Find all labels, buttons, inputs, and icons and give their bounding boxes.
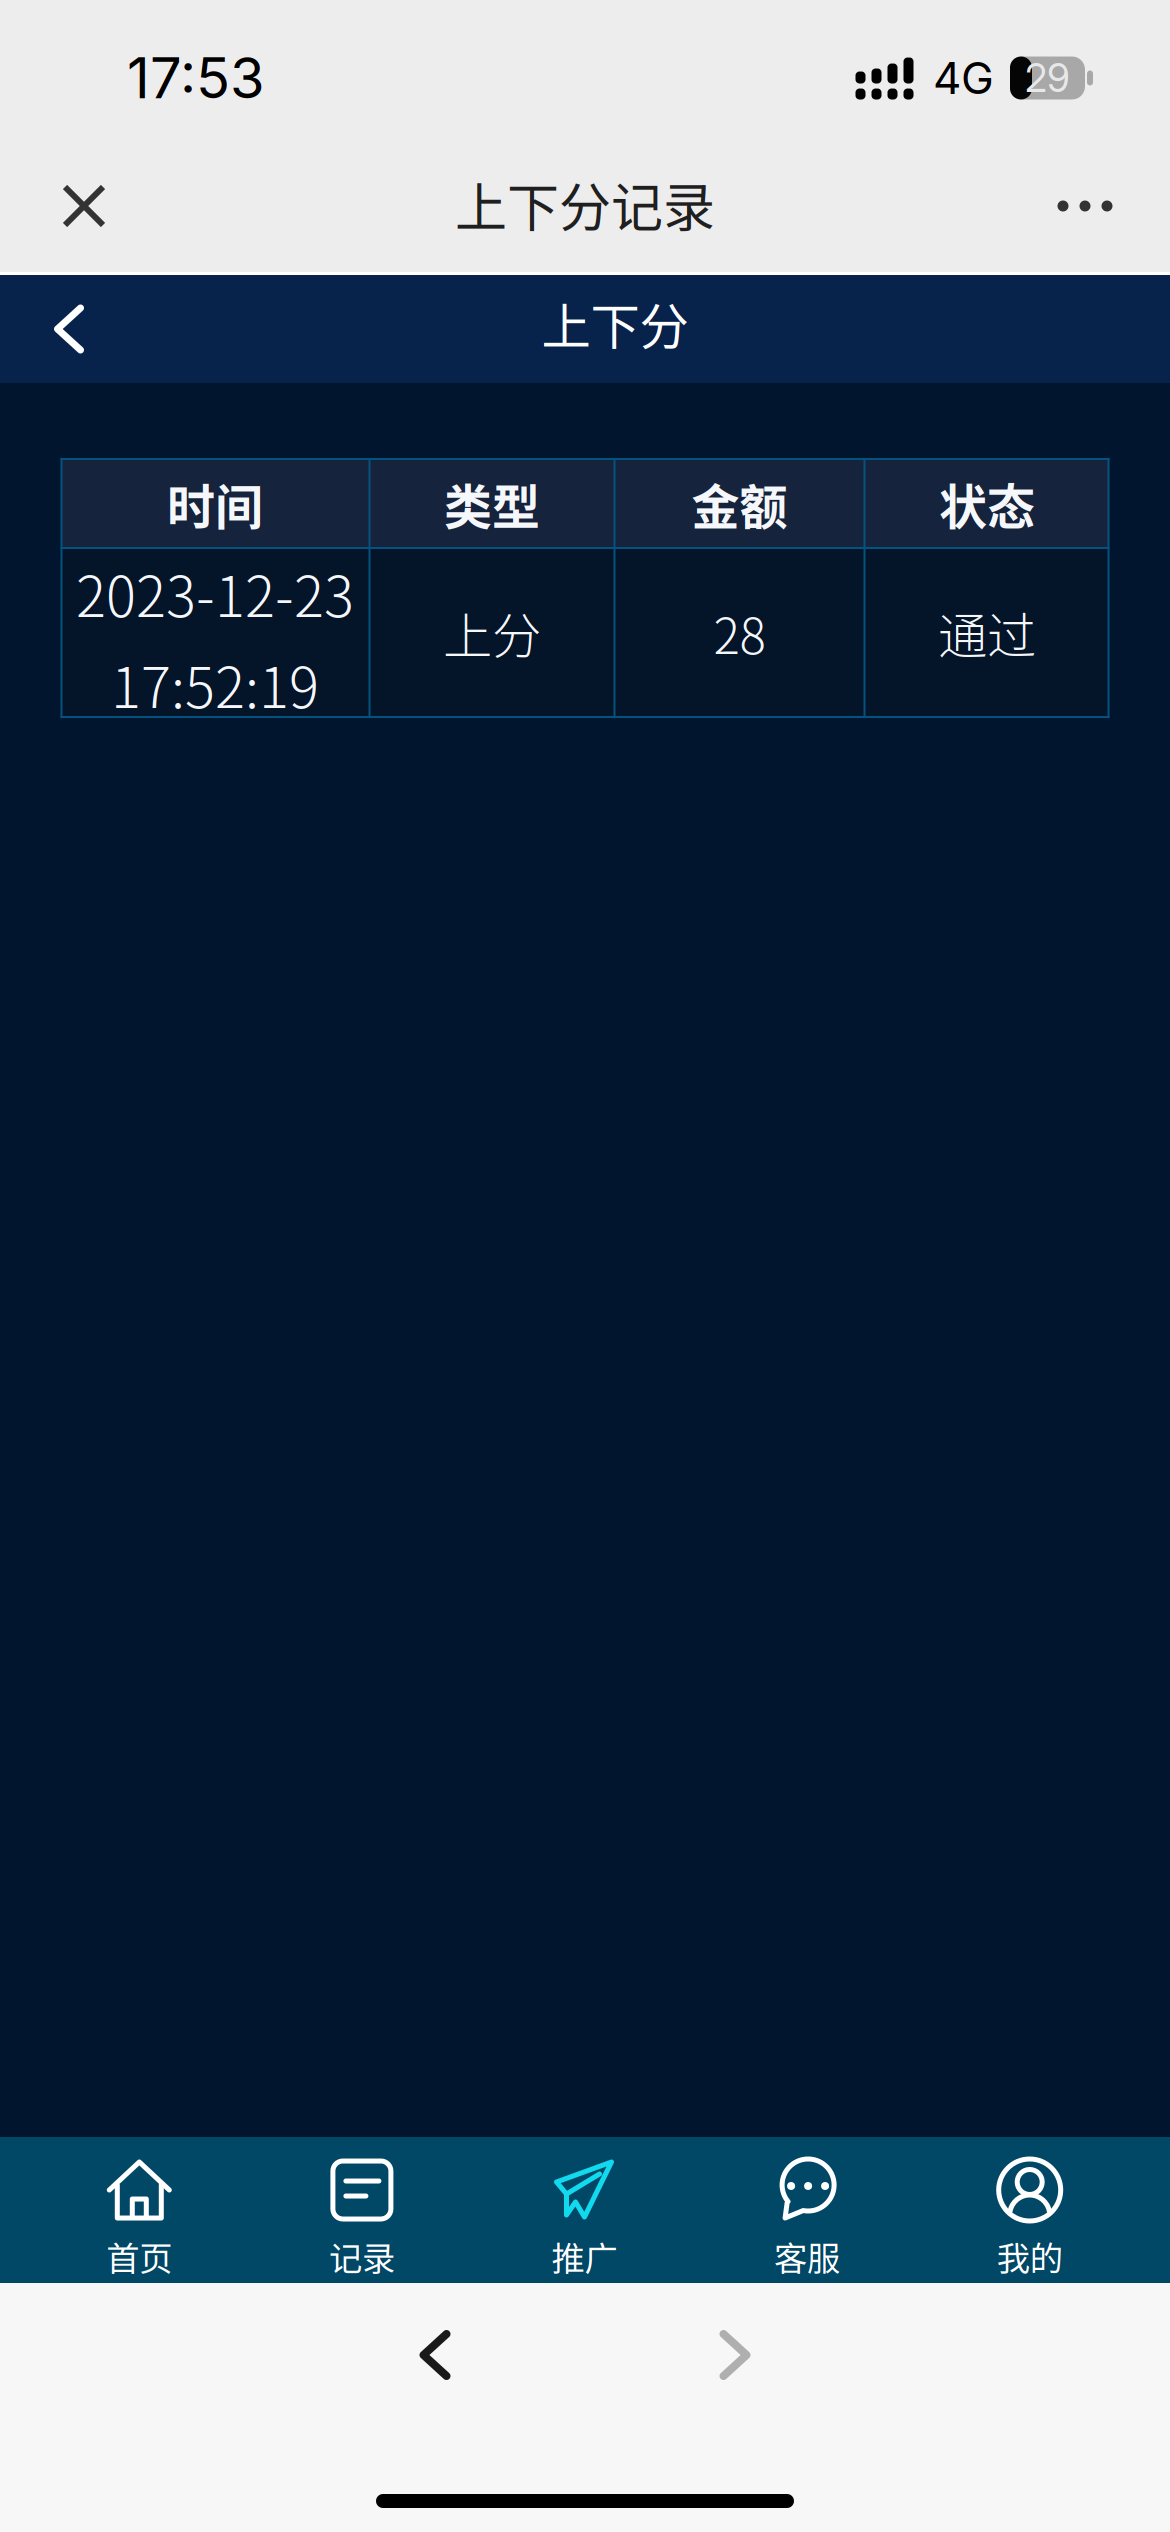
staticText: 金额 [691,469,787,538]
staticText: 类型 [444,469,540,538]
staticText: 记录 [329,2232,395,2280]
button[interactable]: 我的 [918,2137,1141,2283]
button[interactable]: 客服 [696,2137,918,2283]
staticText: 时间 [167,469,263,538]
staticText: 28 [713,597,765,668]
button[interactable]: Back [375,2300,495,2410]
staticText: 29 [1025,55,1070,101]
staticText: 客服 [774,2232,840,2280]
staticText: 4G [933,51,994,105]
staticText: 推广 [551,2232,617,2280]
button[interactable]: More [1037,159,1133,259]
staticText: 我的 [997,2232,1063,2280]
staticText: 通过 [938,597,1036,668]
button[interactable]: 首页 [28,2137,251,2283]
staticText: 状态 [939,469,1035,538]
staticText: 2023-12-23 [76,552,354,633]
staticText: 上下分记录 [455,166,715,242]
button[interactable]: Forward [675,2300,795,2410]
button[interactable]: 推广 [473,2137,696,2283]
button[interactable]: Close [36,159,132,259]
staticText: 上分 [443,597,541,668]
staticText: 首页 [106,2232,172,2280]
staticText: 17:52:19 [111,643,319,724]
staticText: 17:53 [127,44,265,112]
staticText: 上下分 [541,287,688,359]
button[interactable]: 记录 [251,2137,473,2283]
button[interactable]: Back [26,277,112,381]
